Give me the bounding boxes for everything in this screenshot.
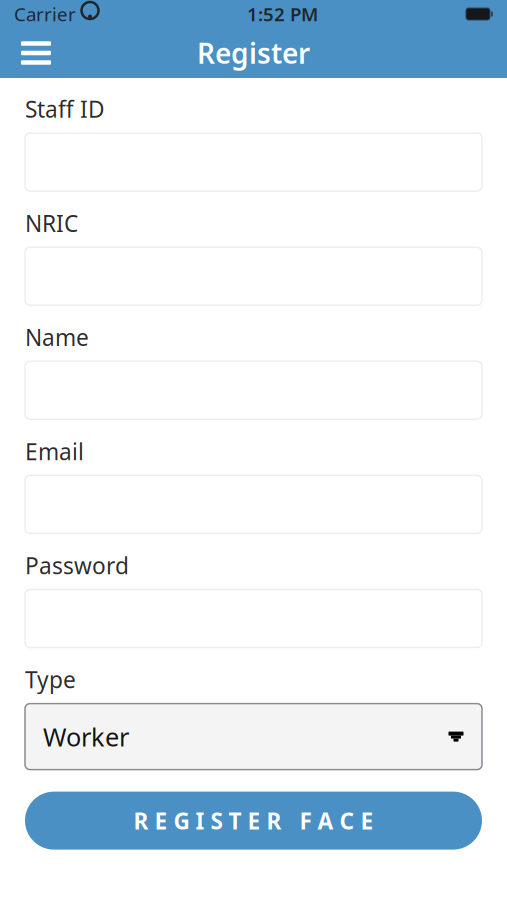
staticText: Type [25,664,76,695]
staticText: Email [25,436,84,466]
button[interactable]: Worker [25,704,482,770]
staticText: Password [25,550,129,580]
staticText: 1:52 PM [247,2,318,26]
staticText: Worker [43,720,129,753]
staticText: Name [25,322,89,352]
staticText: Staff ID [25,94,105,124]
staticText: Carrier [14,2,76,26]
staticText: R E G I S T E R F A C E [133,806,373,836]
button[interactable]: Menu [10,28,62,78]
staticText: NRIC [25,208,78,238]
staticText: Register [197,34,310,72]
button[interactable]: R E G I S T E R F A C E [25,792,482,850]
